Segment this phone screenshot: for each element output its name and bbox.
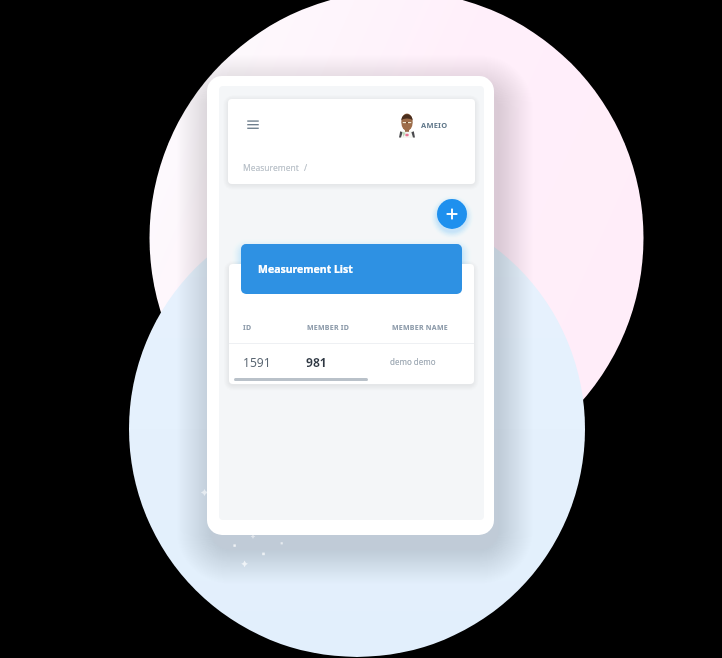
staticText: 1591 — [243, 354, 306, 370]
staticText: / — [304, 162, 308, 174]
button[interactable]: Measurement List — [241, 244, 462, 294]
staticText: demo demo — [390, 356, 436, 367]
button[interactable]: Measurement — [243, 162, 308, 174]
button[interactable]: Add — [437, 199, 467, 229]
button[interactable]: 1591 — [229, 346, 474, 377]
button[interactable]: AMEIO — [397, 112, 448, 138]
staticText: MEMBER NAME — [392, 323, 448, 333]
staticText: Measurement — [243, 162, 299, 174]
staticText: Measurement List — [258, 262, 353, 276]
button[interactable]: Menu — [243, 115, 263, 135]
staticText: 981 — [306, 354, 390, 370]
staticText: ID — [243, 323, 252, 333]
staticText: AMEIO — [421, 120, 448, 130]
staticText: MEMBER ID — [307, 323, 350, 333]
